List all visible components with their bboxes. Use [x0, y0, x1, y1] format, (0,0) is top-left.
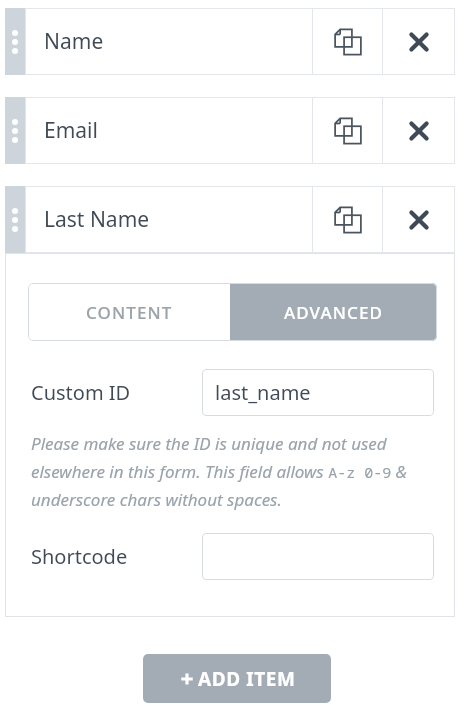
- staticText: ADD ITEM: [198, 666, 296, 692]
- button[interactable]: Duplicate Email: [313, 97, 382, 164]
- button[interactable]: Reorder Email: [5, 97, 25, 164]
- button[interactable]: Last Name: [25, 186, 312, 253]
- button[interactable]: Email: [25, 97, 312, 164]
- button[interactable]: Reorder Name: [5, 8, 25, 75]
- staticText: CONTENT: [86, 301, 173, 324]
- button[interactable]: Remove Name: [383, 8, 455, 75]
- staticText: Email: [44, 116, 98, 145]
- button[interactable]: Name: [25, 8, 312, 75]
- button[interactable]: CONTENT: [28, 283, 230, 341]
- button[interactable]: ADD ITEM: [143, 654, 331, 703]
- staticText: Last Name: [44, 205, 150, 234]
- staticText: ADVANCED: [284, 301, 383, 324]
- button[interactable]: Remove Email: [383, 97, 455, 164]
- staticText: Name: [44, 27, 104, 56]
- button[interactable]: ADVANCED: [230, 283, 437, 341]
- staticText: Custom ID: [31, 379, 131, 406]
- button[interactable]: Duplicate Name: [313, 8, 382, 75]
- button[interactable]: Duplicate Last Name: [313, 186, 382, 253]
- button[interactable]: last_name: [202, 369, 434, 416]
- staticText: last_name: [215, 379, 311, 406]
- button[interactable]: [202, 533, 434, 580]
- staticText: Shortcode: [31, 543, 128, 570]
- button[interactable]: Reorder Last Name: [5, 186, 25, 253]
- button[interactable]: Remove Last Name: [383, 186, 455, 253]
- staticText: Please make sure the ID is unique and no…: [31, 432, 437, 511]
